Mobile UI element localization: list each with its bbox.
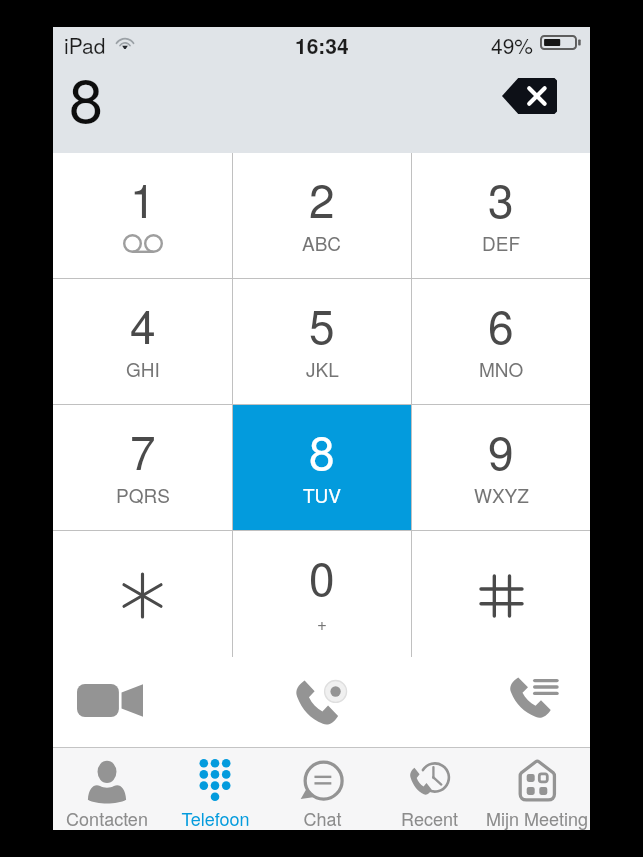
button[interactable]: Contacten	[53, 748, 161, 830]
button[interactable]: 2	[233, 153, 411, 279]
staticText: iPad	[64, 30, 106, 60]
staticText: +	[317, 610, 327, 634]
staticText: PQRS	[116, 481, 170, 508]
button[interactable]: 5	[233, 279, 411, 405]
button[interactable]: Mijn Meeting	[483, 748, 590, 830]
staticText: TUV	[303, 481, 342, 508]
staticText: JKL	[306, 355, 339, 382]
button[interactable]: Chat	[269, 748, 376, 830]
staticText: 16:34	[295, 30, 349, 60]
button[interactable]: Recent	[376, 748, 483, 830]
staticText: ABC	[302, 229, 342, 256]
staticText: 8	[69, 53, 103, 140]
button[interactable]: 1	[53, 153, 232, 279]
staticText: DEF	[482, 229, 521, 256]
staticText: Contacten	[66, 805, 148, 831]
staticText: 9	[488, 417, 514, 483]
button[interactable]: Call history	[489, 670, 575, 728]
staticText: 3	[488, 165, 514, 231]
staticText: Recent	[401, 805, 458, 831]
staticText: MNO	[479, 355, 524, 382]
staticText: WXYZ	[474, 481, 529, 508]
button[interactable]: Call	[279, 666, 365, 728]
staticText: 49%	[491, 30, 534, 60]
button[interactable]: 6	[412, 279, 590, 405]
button[interactable]: 0	[233, 531, 411, 657]
button[interactable]	[412, 531, 590, 657]
staticText: 8	[309, 417, 335, 483]
button[interactable]: Video call	[65, 672, 155, 728]
button[interactable]	[53, 531, 232, 657]
button[interactable]: 4	[53, 279, 232, 405]
button[interactable]: 9	[412, 405, 590, 531]
staticText: 2	[309, 165, 335, 231]
staticText: Mijn Meeting	[486, 805, 588, 831]
button[interactable]: 7	[53, 405, 232, 531]
staticText: GHI	[126, 355, 160, 382]
button[interactable]: 3	[412, 153, 590, 279]
staticText: 0	[309, 543, 335, 609]
staticText: 6	[488, 291, 514, 357]
button[interactable]: Delete	[489, 71, 569, 121]
button[interactable]: 8	[233, 405, 411, 531]
staticText: 1	[130, 165, 156, 231]
staticText: Chat	[303, 805, 342, 831]
staticText: 4	[130, 291, 156, 357]
staticText: 5	[309, 291, 335, 357]
staticText: Telefoon	[181, 805, 250, 831]
button[interactable]: Telefoon	[161, 748, 269, 830]
staticText: 7	[130, 417, 156, 483]
